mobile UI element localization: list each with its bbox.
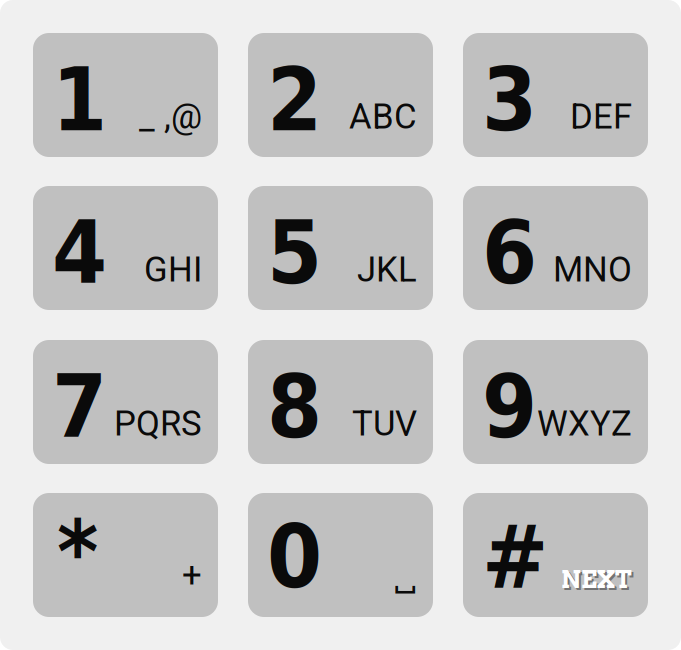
staticText: NEXT — [561, 565, 632, 594]
button[interactable]: 0, space — [248, 493, 433, 617]
button[interactable]: 7 P Q R S — [33, 340, 218, 464]
staticText: * — [57, 501, 98, 603]
staticText: 6 — [482, 202, 537, 304]
button[interactable]: 3 D E F — [463, 33, 648, 157]
staticText: ␣ — [394, 556, 417, 597]
staticText: 7 — [52, 356, 107, 458]
staticText: 1 — [52, 49, 107, 151]
button[interactable]: Star, plus — [33, 493, 218, 617]
staticText: TUV — [352, 403, 417, 444]
staticText: 5 — [267, 202, 322, 304]
staticText: 4 — [52, 202, 107, 304]
staticText: 0 — [267, 506, 322, 608]
staticText: + — [182, 554, 202, 595]
button[interactable]: 2 A B C — [248, 33, 433, 157]
button[interactable]: 1 — [33, 33, 218, 157]
button[interactable]: 4 G H I — [33, 186, 218, 310]
staticText: 8 — [267, 356, 322, 458]
staticText: JKL — [357, 249, 417, 290]
staticText: _ ,@ — [139, 96, 202, 137]
staticText: DEF — [570, 96, 632, 137]
staticText: ABC — [349, 96, 417, 137]
button[interactable]: 9 W X Y Z — [463, 340, 648, 464]
staticText: PQRS — [114, 403, 202, 444]
button[interactable]: 5 J K L — [248, 186, 433, 310]
button[interactable]: 8 T U V — [248, 340, 433, 464]
staticText: 2 — [267, 49, 322, 151]
staticText: WXYZ — [537, 403, 632, 444]
staticText: # — [482, 506, 548, 608]
staticText: MNO — [553, 249, 632, 290]
button[interactable]: 6 M N O — [463, 186, 648, 310]
staticText: 9 — [482, 356, 537, 458]
staticText: 3 — [482, 49, 537, 151]
button[interactable]: Pound, next — [463, 493, 648, 617]
staticText: GHI — [144, 249, 202, 290]
staticText: NEXT — [563, 567, 634, 596]
